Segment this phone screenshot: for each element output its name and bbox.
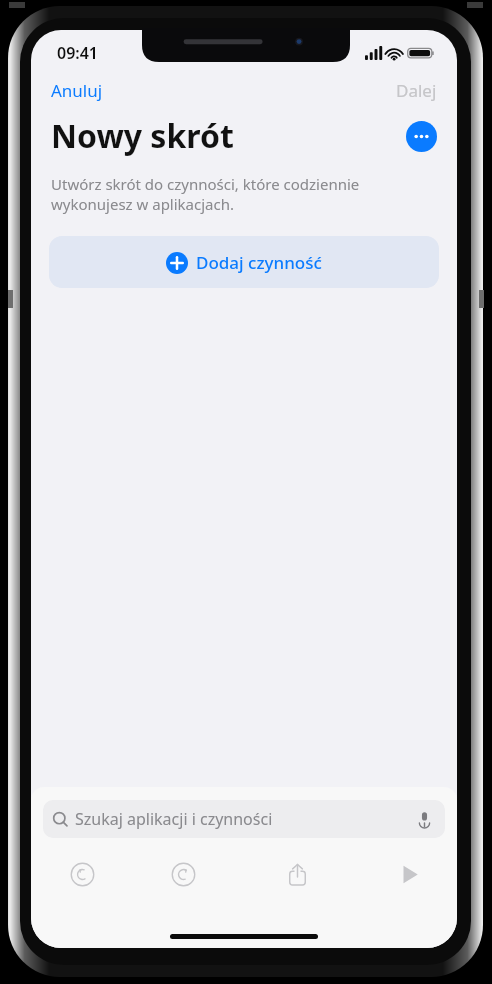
button[interactable]: Udostępnij bbox=[234, 855, 361, 893]
button[interactable]: Szukaj aplikacji i czynności bbox=[43, 800, 445, 838]
staticText: Dodaj czynność bbox=[196, 251, 322, 274]
button[interactable]: Cofnij bbox=[31, 855, 133, 893]
button[interactable]: Ponów bbox=[133, 855, 234, 893]
staticText: Nowy skrót bbox=[51, 114, 406, 158]
staticText: Utwórz skrót do czynności, które codzien… bbox=[51, 174, 360, 214]
button[interactable]: Więcej opcji bbox=[406, 121, 437, 152]
staticText: 09:41 bbox=[57, 42, 99, 64]
button[interactable]: Dyktowanie bbox=[412, 807, 436, 831]
button[interactable]: Odtwórz bbox=[361, 855, 457, 893]
staticText: Szukaj aplikacji i czynności bbox=[75, 808, 412, 830]
button[interactable]: Anuluj bbox=[41, 74, 113, 107]
button[interactable]: Dalej bbox=[386, 74, 447, 107]
button[interactable]: Dodaj czynność bbox=[49, 236, 439, 288]
staticText: Anuluj bbox=[51, 79, 103, 102]
staticText: Dalej bbox=[396, 79, 437, 102]
